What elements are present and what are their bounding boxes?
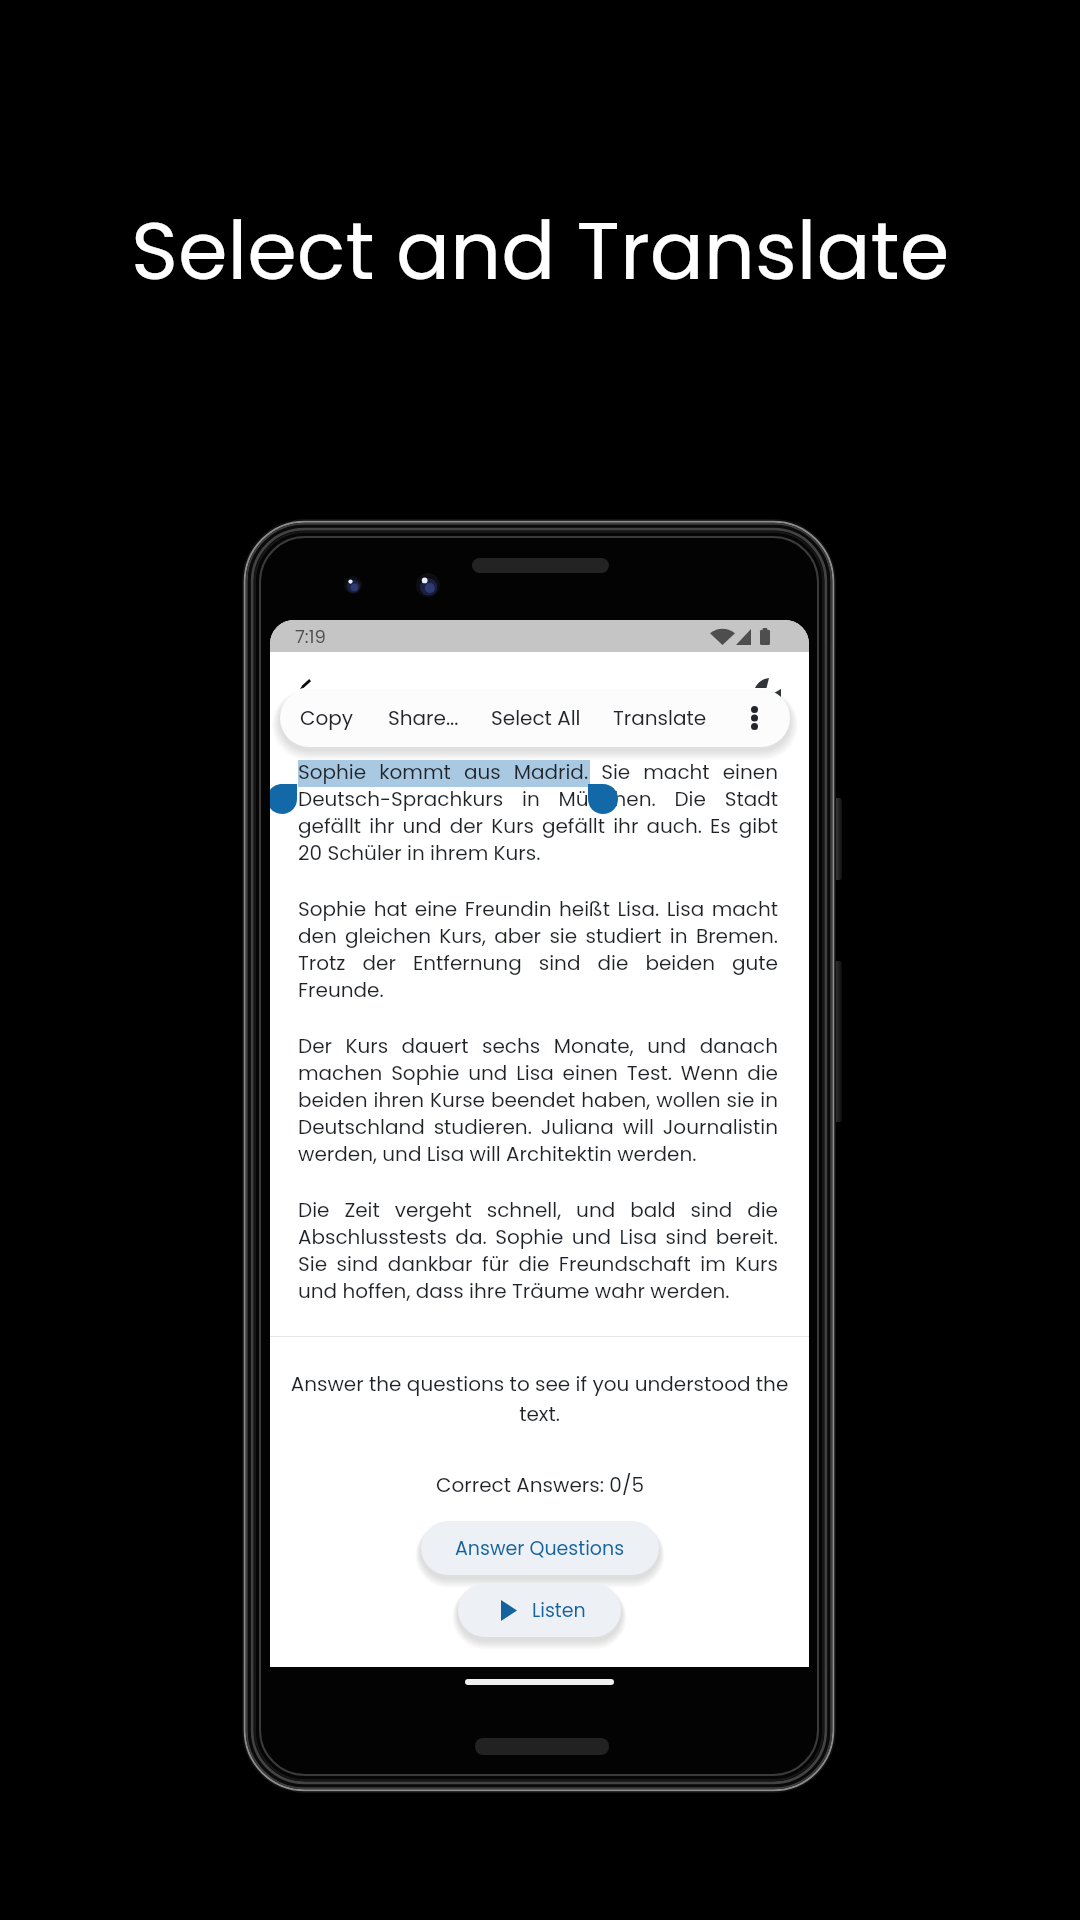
button[interactable]: Listen — [458, 1583, 621, 1637]
button[interactable]: Listen to selection — [755, 678, 781, 697]
button[interactable]: Copy — [288, 689, 366, 747]
button[interactable]: Share... — [376, 689, 471, 747]
staticText: Sophie kommt aus Madrid. Sie macht einen… — [298, 758, 778, 867]
staticText: Translate — [613, 704, 707, 732]
button[interactable]: Answer Questions — [421, 1521, 659, 1575]
button[interactable]: Edit — [300, 679, 311, 689]
staticText: Share... — [388, 704, 459, 732]
staticText: Sophie hat eine Freundin heißt Lisa. Lis… — [298, 895, 778, 1004]
staticText: Correct Answers: 0/5 — [436, 1471, 644, 1499]
button[interactable]: Translate — [601, 689, 719, 747]
staticText: Answer Questions — [455, 1535, 625, 1562]
staticText: Select All — [491, 704, 581, 732]
staticText: Copy — [300, 704, 354, 732]
staticText: Der Kurs dauert sechs Monate, und danach… — [298, 1032, 778, 1168]
button[interactable]: Select All — [479, 689, 593, 747]
staticText: Die Zeit vergeht schnell, und bald sind … — [298, 1196, 778, 1305]
staticText: Listen — [532, 1597, 586, 1624]
staticText: Select and Translate — [131, 195, 950, 307]
button[interactable]: More options — [732, 689, 776, 747]
staticText: 7:19 — [295, 624, 326, 649]
staticText: Answer the questions to see if you under… — [290, 1370, 789, 1428]
